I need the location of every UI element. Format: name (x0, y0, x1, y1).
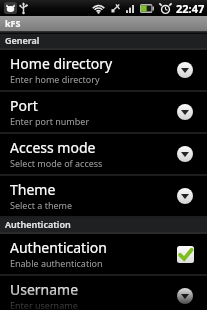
staticText: Select a theme (10, 199, 73, 211)
button[interactable]: Authentication (173, 242, 197, 266)
staticText: Home directory (10, 54, 113, 73)
button[interactable]: Username (173, 284, 197, 308)
staticText: Enter port number (10, 115, 90, 127)
staticText: kFS (5, 17, 21, 29)
staticText: Authentication (5, 218, 71, 230)
staticText: Username (10, 280, 79, 299)
button[interactable]: Access mode (0, 134, 207, 174)
button[interactable]: Username (0, 276, 207, 310)
button[interactable]: Port (173, 100, 197, 124)
button[interactable]: Theme (173, 184, 197, 208)
staticText: General (5, 34, 40, 46)
staticText: Enter username (10, 299, 78, 310)
button[interactable]: Authentication (0, 234, 207, 274)
staticText: Enable authentication (10, 257, 103, 269)
button[interactable]: Home directory (0, 50, 207, 90)
staticText: Enter home directory (10, 73, 100, 85)
staticText: 22:47 (176, 1, 205, 16)
staticText: Port (10, 96, 38, 115)
button[interactable]: Access mode (173, 142, 197, 166)
button[interactable]: Theme (0, 176, 207, 216)
staticText: Access mode (10, 138, 96, 157)
staticText: Select mode of access (10, 157, 103, 169)
button[interactable]: Home directory (173, 58, 197, 82)
staticText: Authentication (10, 238, 107, 257)
staticText: Theme (10, 180, 56, 199)
button[interactable]: Port (0, 92, 207, 132)
